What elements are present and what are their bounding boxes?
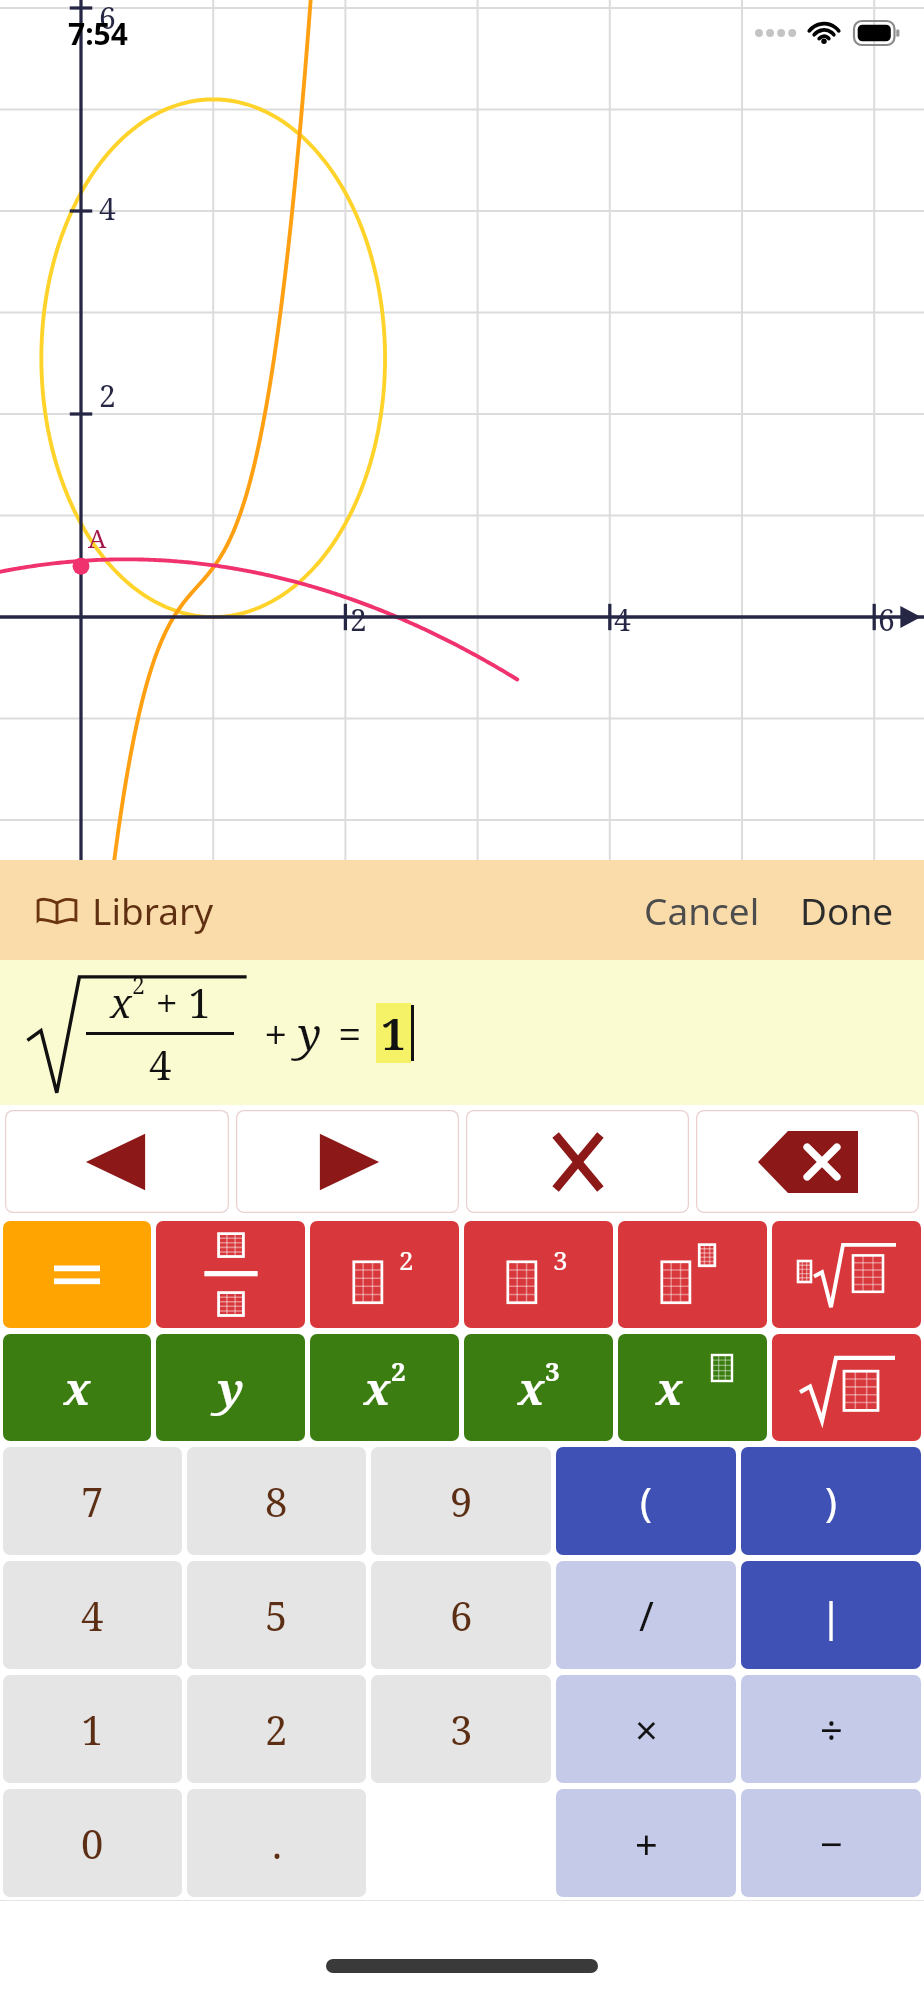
staticText: −	[820, 1816, 843, 1870]
button[interactable]: x	[0, 960, 924, 1105]
staticText: )	[825, 1474, 837, 1528]
button[interactable]: 3	[371, 1675, 551, 1783]
staticText: x	[518, 1358, 545, 1418]
staticText: (	[640, 1474, 652, 1528]
staticText: 2	[99, 375, 116, 416]
staticText: 2	[350, 599, 367, 640]
staticText: 4	[81, 1588, 104, 1642]
button[interactable]: 2	[187, 1675, 366, 1783]
staticText: x	[64, 1358, 91, 1418]
staticText: 0	[81, 1816, 104, 1870]
staticText: .	[272, 1816, 282, 1870]
button[interactable]: )	[741, 1447, 921, 1555]
staticText: y	[218, 1358, 244, 1418]
staticText: ÷	[820, 1702, 843, 1756]
button[interactable]: (	[556, 1447, 736, 1555]
staticText: /	[639, 1588, 654, 1642]
staticText: =	[338, 1005, 362, 1062]
button[interactable]: 4	[3, 1561, 182, 1669]
staticText: 4	[99, 188, 116, 229]
button[interactable]: 5	[187, 1561, 366, 1669]
staticText: ×	[635, 1702, 658, 1756]
staticText: A	[88, 520, 107, 555]
staticText: |	[820, 1588, 843, 1642]
staticText: 1	[381, 1003, 406, 1063]
button[interactable]: −	[741, 1789, 921, 1897]
button[interactable]: x to the power	[618, 1334, 767, 1441]
button[interactable]: 0	[3, 1789, 182, 1897]
button[interactable]: x	[310, 1334, 459, 1441]
button[interactable]: |	[741, 1561, 921, 1669]
button[interactable]: .	[187, 1789, 366, 1897]
button[interactable]: Library	[28, 879, 222, 941]
staticText: 2	[391, 1353, 406, 1388]
button[interactable]: Move right	[236, 1110, 459, 1213]
button[interactable]: Backspace	[696, 1110, 919, 1213]
button[interactable]: Nth root	[772, 1221, 921, 1328]
button[interactable]: 7	[3, 1447, 182, 1555]
staticText: + 1	[145, 975, 211, 1029]
staticText: y	[298, 1003, 322, 1063]
button[interactable]: Power	[618, 1221, 767, 1328]
staticText: +	[635, 1816, 658, 1870]
staticText: 3	[450, 1702, 473, 1756]
staticText: x	[364, 1358, 391, 1418]
button[interactable]: y	[156, 1334, 305, 1441]
button[interactable]: 6	[371, 1561, 551, 1669]
staticText: Cancel	[644, 885, 760, 935]
staticText: 5	[265, 1588, 288, 1642]
staticText: 4	[614, 599, 631, 640]
staticText: 7:54	[68, 13, 128, 54]
button[interactable]: Done	[790, 877, 904, 943]
button[interactable]: /	[556, 1561, 736, 1669]
button[interactable]: 8	[187, 1447, 366, 1555]
staticText: Done	[800, 885, 894, 935]
staticText: 6	[878, 599, 895, 640]
staticText: 7	[81, 1474, 104, 1528]
button[interactable]: Clear all	[466, 1110, 689, 1213]
button[interactable]: Cubed	[464, 1221, 613, 1328]
staticText: 8	[265, 1474, 288, 1528]
button[interactable]: 1	[3, 1675, 182, 1783]
button[interactable]: 9	[371, 1447, 551, 1555]
button[interactable]: x	[3, 1334, 151, 1441]
staticText: 3	[553, 1242, 568, 1277]
staticText: 1	[81, 1702, 104, 1756]
button[interactable]: +	[556, 1789, 736, 1897]
staticText: 3	[545, 1353, 560, 1388]
button[interactable]: Fraction	[156, 1221, 305, 1328]
staticText: x	[110, 975, 132, 1029]
staticText: 2	[399, 1242, 414, 1277]
button[interactable]: ×	[556, 1675, 736, 1783]
staticText: 2	[132, 969, 145, 1000]
button[interactable]: ÷	[741, 1675, 921, 1783]
staticText: 9	[450, 1474, 473, 1528]
button[interactable]: Square root	[772, 1334, 921, 1441]
staticText: 6	[99, 0, 116, 38]
staticText: x	[656, 1358, 683, 1418]
staticText: 2	[265, 1702, 288, 1756]
button[interactable]: Squared	[310, 1221, 459, 1328]
button[interactable]: x	[464, 1334, 613, 1441]
staticText: 4	[149, 1037, 172, 1091]
staticText: 6	[450, 1588, 473, 1642]
staticText: Library	[92, 885, 214, 935]
button[interactable]: Equals	[3, 1221, 151, 1328]
button[interactable]: Cancel	[634, 877, 770, 943]
staticText: +	[264, 1005, 288, 1062]
button[interactable]: Move left	[5, 1110, 229, 1213]
